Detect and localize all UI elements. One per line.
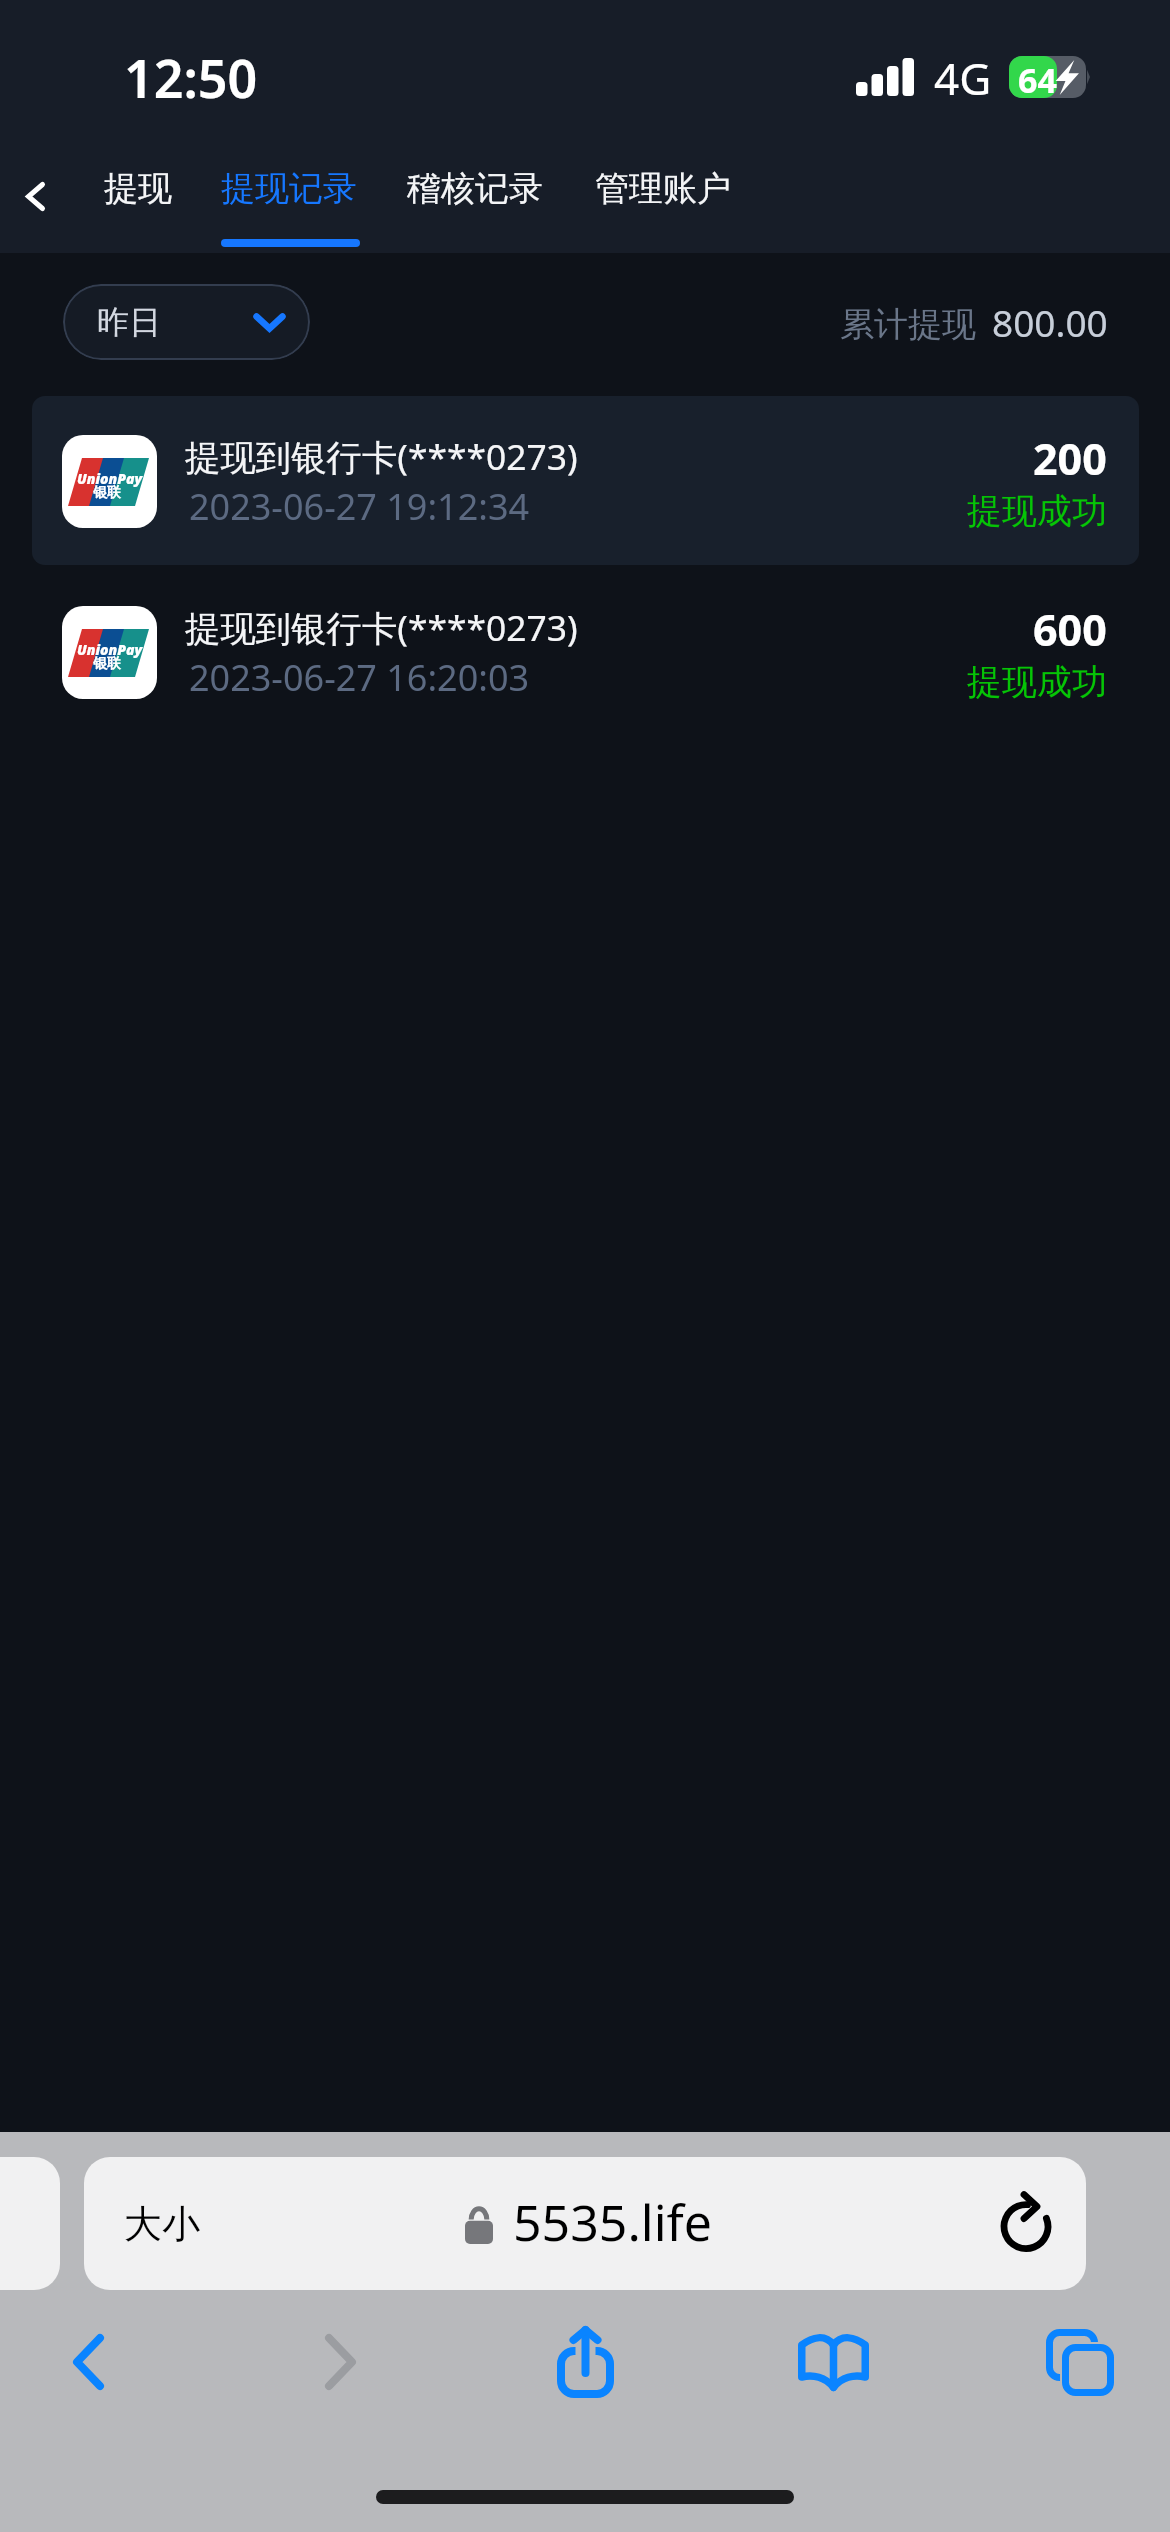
- button[interactable]: 提现: [86, 152, 190, 246]
- button[interactable]: 提现记录: [203, 152, 375, 246]
- button[interactable]: Tabs: [1010, 2302, 1150, 2422]
- staticText: 提现成功: [967, 660, 1107, 704]
- staticText: 银联: [93, 484, 121, 502]
- button[interactable]: Back: [0, 146, 70, 246]
- button[interactable]: Forward: [270, 2302, 410, 2422]
- staticText: 提现到银行卡(****0273): [185, 603, 578, 651]
- staticText: 2023-06-27 16:20:03: [189, 653, 530, 702]
- staticText: UnionPay: [77, 469, 143, 488]
- button[interactable]: Share: [515, 2302, 655, 2422]
- staticText: 2023-06-27 19:12:34: [189, 482, 530, 531]
- button[interactable]: Back: [18, 2302, 158, 2422]
- staticText: 600: [1033, 600, 1107, 659]
- button[interactable]: 昨日: [63, 284, 310, 360]
- button[interactable]: 稽核记录: [389, 152, 561, 246]
- button[interactable]: Bookmarks: [763, 2302, 903, 2422]
- staticText: 累计提现: [840, 303, 976, 346]
- staticText: UnionPay: [77, 640, 143, 659]
- staticText: 银联: [93, 655, 121, 673]
- staticText: 800.00: [992, 297, 1108, 347]
- staticText: 稽核记录: [407, 167, 543, 210]
- staticText: 64: [1018, 57, 1057, 103]
- staticText: 提现成功: [967, 489, 1107, 533]
- staticText: 200: [1033, 429, 1107, 488]
- staticText: 昨日: [97, 302, 161, 342]
- staticText: 提现: [104, 167, 172, 210]
- staticText: 提现到银行卡(****0273): [185, 432, 578, 480]
- staticText: 5535.life: [513, 2188, 712, 2256]
- staticText: 大小: [124, 2200, 200, 2248]
- staticText: 12:50: [124, 42, 258, 113]
- button[interactable]: UnionPay: [32, 396, 1139, 565]
- staticText: 管理账户: [595, 167, 731, 210]
- button[interactable]: Reload: [978, 2176, 1074, 2272]
- button[interactable]: 管理账户: [577, 152, 749, 246]
- staticText: 提现记录: [221, 167, 357, 210]
- button[interactable]: 大小: [84, 2157, 1086, 2290]
- staticText: 4G: [934, 48, 992, 108]
- button[interactable]: UnionPay: [32, 567, 1139, 736]
